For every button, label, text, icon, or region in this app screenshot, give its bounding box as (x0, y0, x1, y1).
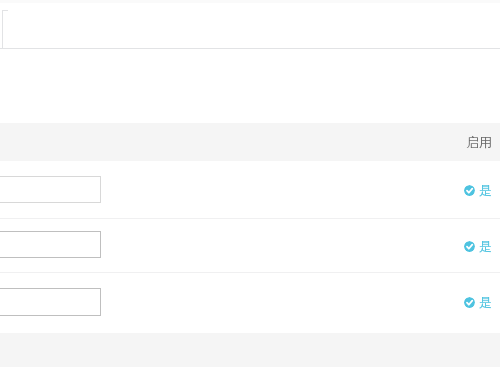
other: 启用 (464, 185, 475, 196)
button[interactable]: 启用 (464, 238, 492, 254)
button[interactable]: 启用 (464, 182, 492, 198)
staticText: 启用 (466, 134, 492, 150)
other: 启用 (464, 241, 475, 252)
staticText: 是 (479, 182, 492, 198)
button[interactable]: 启用 (464, 294, 492, 310)
button[interactable]: 启用 (0, 161, 500, 218)
button[interactable] (0, 231, 101, 258)
staticText: 是 (479, 294, 492, 310)
button[interactable]: 启用 (0, 219, 500, 272)
other: 启用 (464, 297, 475, 308)
button[interactable]: 启用 (0, 273, 500, 331)
button[interactable] (0, 176, 101, 203)
button[interactable] (0, 288, 101, 316)
staticText: 是 (479, 238, 492, 254)
